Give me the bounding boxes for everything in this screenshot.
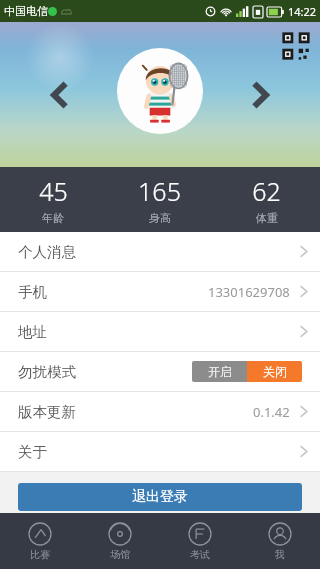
button[interactable]: 我 <box>240 513 320 569</box>
staticText: 场馆 <box>110 548 130 561</box>
staticText: 我 <box>275 548 285 561</box>
staticText: 身高 <box>149 211 171 225</box>
button[interactable]: 二维码 <box>281 31 311 61</box>
button[interactable]: 关于 <box>0 432 320 471</box>
staticText: 中国电信 <box>4 4 48 18</box>
button[interactable]: 45 <box>0 167 106 232</box>
button[interactable]: 版本更新 <box>0 392 320 431</box>
button[interactable]: 手机 <box>0 272 320 311</box>
staticText: 165 <box>138 174 181 208</box>
button[interactable]: 开启 <box>192 361 247 382</box>
button[interactable]: 62 <box>213 167 320 232</box>
button[interactable]: 下一个 <box>242 77 278 113</box>
staticText: 手机 <box>18 283 47 301</box>
staticText: 45 <box>39 174 68 208</box>
button[interactable]: 考试 <box>160 513 240 569</box>
staticText: 版本更新 <box>18 403 76 421</box>
staticText: 关闭 <box>263 364 287 379</box>
staticText: 62 <box>252 174 281 208</box>
staticText: 关于 <box>18 443 47 461</box>
staticText: 开启 <box>208 364 232 379</box>
button[interactable]: 个人消息 <box>0 232 320 271</box>
button[interactable]: 地址 <box>0 312 320 351</box>
staticText: 勿扰模式 <box>18 363 76 381</box>
staticText: 退出登录 <box>132 488 188 506</box>
staticText: 比赛 <box>30 548 50 561</box>
button[interactable]: 头像 <box>117 48 203 134</box>
staticText: 13301629708 <box>208 283 290 301</box>
staticText: 14:22 <box>288 4 317 19</box>
staticText: 年龄 <box>42 211 64 225</box>
staticText: 0.1.42 <box>253 403 290 421</box>
staticText: 体重 <box>256 211 278 225</box>
staticText: 地址 <box>18 323 47 341</box>
button[interactable]: 关闭 <box>247 361 302 382</box>
button[interactable]: 比赛 <box>0 513 80 569</box>
button[interactable]: 退出登录 <box>18 483 302 511</box>
button[interactable]: 上一个 <box>42 77 78 113</box>
button[interactable]: 165 <box>106 167 213 232</box>
staticText: 考试 <box>190 548 210 561</box>
button[interactable]: 场馆 <box>80 513 160 569</box>
staticText: 个人消息 <box>18 243 76 261</box>
